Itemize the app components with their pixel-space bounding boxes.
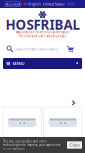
staticText: MENU [13,61,25,66]
button[interactable]: English [24,1,40,7]
button[interactable]: Next slide [68,99,85,107]
staticText: Maquinaria de Hostelería y alimentación [15,30,69,34]
button[interactable]: search entire store here... [0,42,63,56]
staticText: Account [6,1,20,7]
button[interactable] [3,107,41,137]
button[interactable]: MENU [3,58,82,69]
staticText: Frío industrial y aire acondicionado [18,34,66,38]
button[interactable]: Shopping cart [63,42,77,56]
staticText: Close [69,142,79,148]
staticText: This site uses cookies and other technol… [3,140,61,150]
staticText: English [28,1,40,7]
staticText: HOSFRIBAL [5,16,79,33]
button[interactable]: Account [5,2,21,6]
button[interactable]: Currency selector [67,2,75,6]
staticText: United States [43,1,65,7]
button[interactable]: Close [67,141,82,149]
staticText: search entire store here... [15,46,60,52]
button[interactable]: United States [43,1,65,7]
button[interactable] [44,107,82,137]
button[interactable]: HOSFRIBAL [0,8,85,42]
